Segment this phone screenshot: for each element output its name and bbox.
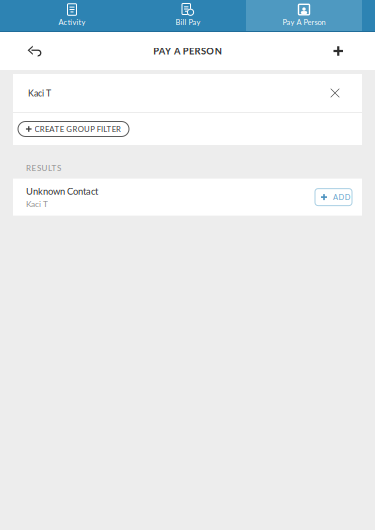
- button[interactable]: CREATE GROUP FILTER: [18, 121, 129, 136]
- button[interactable]: Bill Pay: [130, 0, 246, 31]
- staticText: Bill Pay: [175, 17, 200, 26]
- button[interactable]: Clear search: [315, 74, 355, 112]
- staticText: ADD: [333, 193, 351, 202]
- button[interactable]: Add person: [307, 32, 375, 70]
- staticText: RESULTS: [26, 163, 61, 173]
- button[interactable]: Pay A Person: [246, 0, 362, 31]
- staticText: Activity: [58, 17, 85, 26]
- button[interactable]: Back: [0, 32, 68, 70]
- button[interactable]: Unknown Contact: [13, 179, 362, 216]
- staticText: Kaci T: [28, 88, 51, 98]
- staticText: PAY A PERSON: [153, 45, 222, 57]
- staticText: CREATE GROUP FILTER: [35, 124, 121, 134]
- staticText: Pay A Person: [282, 17, 325, 26]
- staticText: Unknown Contact: [26, 185, 98, 197]
- button[interactable]: Activity: [14, 0, 130, 31]
- staticText: Kaci T: [26, 199, 48, 209]
